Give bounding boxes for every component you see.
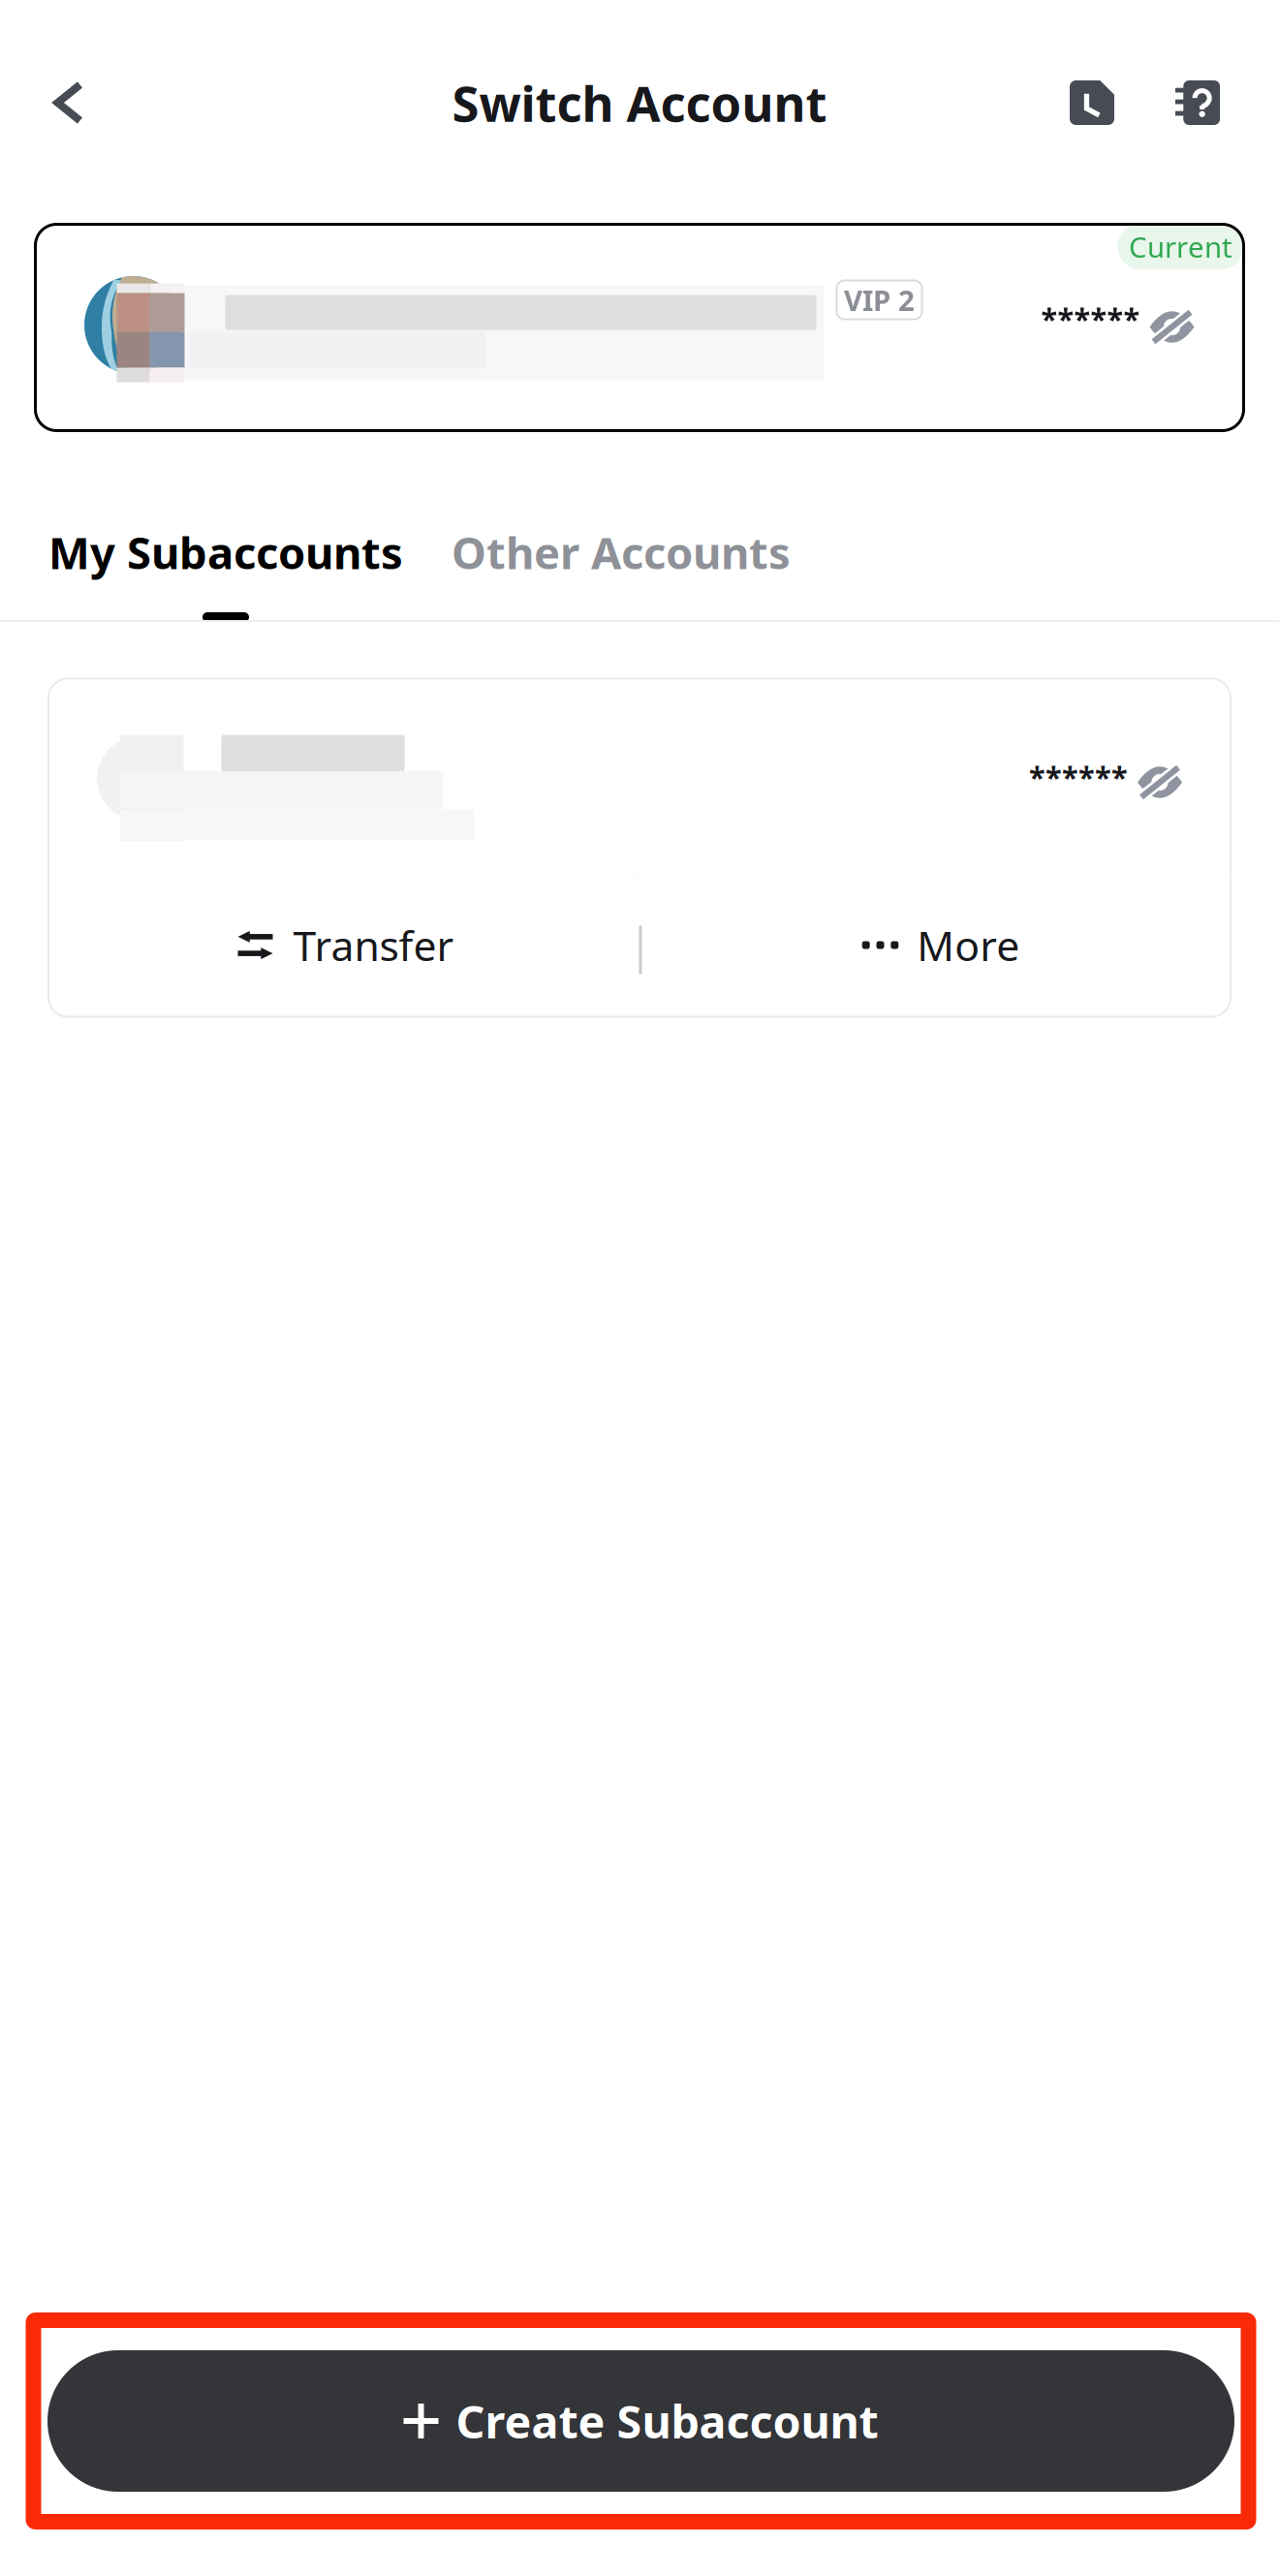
button[interactable]: Order history — [1045, 54, 1139, 151]
staticText: Switch Account — [452, 70, 827, 135]
button[interactable]: Create Subaccount — [47, 2350, 1234, 2492]
staticText: ****** — [1041, 298, 1140, 338]
button[interactable]: Back — [11, 48, 127, 157]
staticText: Create Subaccount — [456, 2391, 878, 2451]
button[interactable]: Other Accounts — [437, 486, 805, 618]
staticText: My Subaccounts — [48, 523, 403, 581]
button[interactable]: Help — [1151, 54, 1244, 151]
button[interactable]: My Subaccounts — [42, 496, 410, 628]
staticText: More — [917, 918, 1020, 973]
staticText: VIP 2 — [844, 281, 915, 319]
button[interactable]: VIP 2 — [35, 224, 1244, 431]
staticText: ****** — [1029, 757, 1128, 796]
staticText: Other Accounts — [452, 523, 791, 581]
button[interactable]: More — [640, 876, 1230, 1014]
staticText: Current — [1129, 228, 1232, 265]
staticText: Transfer — [293, 918, 454, 973]
button[interactable]: Transfer — [49, 876, 639, 1014]
